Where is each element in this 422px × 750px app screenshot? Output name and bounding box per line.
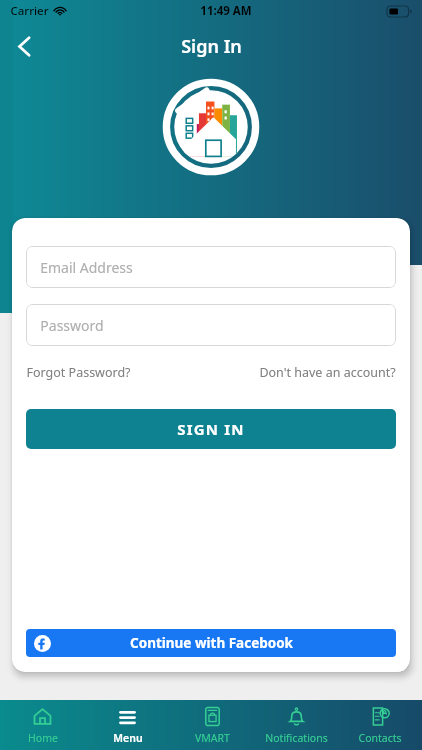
button[interactable]: Home bbox=[0, 700, 85, 750]
button[interactable]: Password bbox=[26, 304, 396, 346]
staticText: Contacts bbox=[358, 731, 402, 745]
staticText: Sign In bbox=[181, 34, 242, 59]
button[interactable]: Continue with Facebook bbox=[26, 629, 396, 657]
staticText: SIGN IN bbox=[177, 419, 245, 439]
staticText: Password bbox=[40, 316, 104, 335]
button[interactable]: Notifications bbox=[254, 700, 338, 750]
button[interactable]: Email Address bbox=[26, 246, 396, 288]
staticText: Menu bbox=[113, 731, 143, 745]
button[interactable]: Forgot Password? bbox=[26, 362, 131, 383]
button[interactable]: VMART bbox=[170, 700, 254, 750]
button[interactable]: Back bbox=[0, 22, 48, 70]
staticText: Continue with Facebook bbox=[130, 634, 293, 652]
staticText: Carrier bbox=[10, 3, 49, 19]
staticText: VMART bbox=[195, 731, 230, 745]
button[interactable]: SIGN IN bbox=[26, 409, 396, 449]
staticText: Notifications bbox=[265, 731, 328, 745]
button[interactable]: Menu bbox=[85, 700, 170, 750]
staticText: Email Address bbox=[40, 258, 133, 277]
staticText: 11:49 AM bbox=[200, 3, 252, 19]
staticText: Don't have an account? bbox=[259, 364, 396, 381]
button[interactable]: Don't have an account? bbox=[259, 362, 396, 383]
staticText: Forgot Password? bbox=[26, 364, 131, 381]
button[interactable]: Contacts bbox=[338, 700, 422, 750]
staticText: Home bbox=[28, 731, 58, 745]
